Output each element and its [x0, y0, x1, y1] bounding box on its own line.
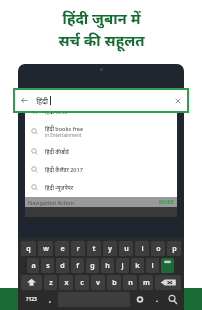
staticText: w [43, 244, 49, 254]
staticText: हिंदी कैलेंडर 2017 [45, 166, 83, 173]
staticText: k [135, 261, 140, 271]
button[interactable]: d [56, 258, 69, 273]
staticText: हिंदी कीबोर्ड [45, 148, 69, 155]
button[interactable]: हिंदी कीबोर्ड [25, 142, 177, 160]
staticText: b [112, 278, 117, 288]
staticText: y [108, 244, 112, 254]
button[interactable]: Back [20, 96, 29, 105]
staticText: ?123 [26, 296, 37, 303]
staticText: सर्च की सहूलत [58, 30, 145, 50]
staticText: हिंदी जुबान में [62, 8, 141, 28]
staticText: in Entertainment [45, 132, 82, 138]
staticText: h [105, 261, 110, 271]
button[interactable]: MORE [159, 199, 174, 206]
button[interactable]: Back [15, 90, 187, 111]
button[interactable]: t [87, 241, 101, 256]
staticText: q [26, 244, 31, 254]
button[interactable]: r [71, 241, 85, 256]
button[interactable]: k [131, 258, 144, 273]
button[interactable]: , [44, 292, 56, 307]
button[interactable]: s [41, 258, 54, 273]
button[interactable]: Language [161, 258, 174, 273]
button[interactable]: हिंदी कैलेंडर 2017 [25, 160, 177, 178]
staticText: m [143, 278, 150, 288]
staticText: हिंदी books free [45, 125, 84, 132]
button[interactable]: q [21, 241, 36, 256]
button[interactable]: Settings [132, 292, 148, 307]
staticText: e [60, 244, 65, 254]
staticText: d [60, 261, 65, 271]
button[interactable]: Backspace [155, 275, 181, 290]
button[interactable]: v [91, 275, 105, 290]
button[interactable]: x [59, 275, 73, 290]
staticText: j [121, 261, 124, 271]
staticText: n [128, 278, 133, 288]
button[interactable]: b [107, 275, 121, 290]
staticText: g [90, 261, 95, 271]
button[interactable]: y [103, 241, 117, 256]
button[interactable]: g [86, 258, 99, 273]
button[interactable]: p [167, 241, 181, 256]
button[interactable]: Search [165, 292, 181, 307]
button[interactable]: Clear [174, 97, 182, 105]
button[interactable]: . [150, 292, 163, 307]
button[interactable]: f [71, 258, 84, 273]
staticText: Navigation Action [28, 199, 74, 206]
button[interactable]: z [44, 275, 57, 290]
staticText: हिंदी [36, 96, 49, 106]
staticText: l [151, 261, 154, 271]
staticText: f [76, 261, 79, 271]
button[interactable]: j [116, 258, 129, 273]
button[interactable]: o [151, 241, 165, 256]
button[interactable]: Shift [21, 275, 42, 290]
staticText: z [49, 278, 53, 288]
staticText: a [31, 261, 36, 271]
staticText: t [92, 244, 96, 254]
button[interactable]: हिंदी शायरी [25, 102, 177, 120]
button[interactable]: u [119, 241, 133, 256]
staticText: r [76, 244, 80, 254]
button[interactable]: e [55, 241, 69, 256]
staticText: c [80, 278, 84, 288]
staticText: हिंदी शायरी [45, 108, 68, 115]
staticText: s [46, 261, 50, 271]
button[interactable]: a [27, 258, 39, 273]
button[interactable]: m [139, 275, 153, 290]
staticText: u [124, 244, 129, 254]
button[interactable]: w [38, 241, 53, 256]
staticText: i [141, 244, 144, 254]
staticText: o [156, 244, 161, 254]
staticText: x [64, 278, 69, 288]
button[interactable]: हिंदी books free [25, 120, 177, 142]
button[interactable]: n [123, 275, 137, 290]
button[interactable]: ?123 [21, 292, 42, 307]
staticText: MORE [159, 199, 174, 206]
staticText: हिंदी न्यूज़पेपर [45, 184, 74, 191]
staticText: , [49, 295, 51, 305]
button[interactable]: c [75, 275, 89, 290]
button[interactable]: हिंदी न्यूज़पेपर [25, 178, 177, 196]
button[interactable]: h [101, 258, 114, 273]
staticText: p [172, 244, 177, 254]
staticText: . [156, 295, 158, 305]
button[interactable]: l [146, 258, 159, 273]
button[interactable]: i [135, 241, 149, 256]
staticText: v [96, 278, 100, 288]
